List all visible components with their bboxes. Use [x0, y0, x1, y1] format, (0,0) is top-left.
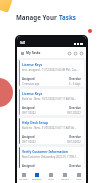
staticText: 09/12/2022 [67, 140, 81, 144]
staticText: Help Desk Setup [22, 121, 48, 125]
staticText: Overdue [69, 164, 81, 168]
button[interactable]: License Keys [19, 89, 84, 115]
staticText: Reports [61, 178, 70, 181]
staticText: My Tasks [19, 178, 29, 181]
staticText: Overdue [69, 77, 81, 81]
staticText: test - assigned - 11/12/2022 5:02:08 PM … [22, 68, 79, 72]
staticText: Overdue [69, 106, 81, 110]
staticText: 09/11/2022 [22, 140, 36, 144]
staticText: Chats [48, 178, 54, 181]
button[interactable]: My Tasks [17, 168, 30, 183]
staticText: 6 - 5 days [69, 82, 81, 86]
staticText: License Keys [22, 92, 43, 96]
staticText: 9:41 [20, 41, 26, 45]
staticText: Assigned [22, 135, 35, 139]
staticText: Requests [32, 178, 42, 181]
button[interactable]: Action [73, 51, 77, 55]
button[interactable]: Action [79, 51, 83, 55]
button[interactable]: License Keys [19, 60, 84, 86]
button[interactable]: Verify Customer Information [19, 147, 84, 168]
staticText: 09/12/2022 [67, 111, 81, 115]
staticText: Assigned [22, 164, 35, 168]
button[interactable]: Chats [44, 168, 58, 183]
button[interactable]: More [72, 168, 86, 183]
staticText: 3 minutes ago [22, 82, 40, 86]
staticText: Verify Customer Information [22, 150, 68, 154]
staticText: License Keys [22, 63, 43, 67]
staticText: More [76, 178, 82, 181]
staticText: Tasks [59, 13, 76, 21]
button[interactable]: Menu [20, 51, 24, 55]
button[interactable]: Reports [58, 168, 72, 183]
staticText: Assigned [22, 106, 35, 110]
staticText: Overdue [69, 135, 81, 139]
staticText: Build no - New - 31/05/2022 5:07:11 AM S… [22, 126, 77, 130]
staticText: New Customer Onboarding 2022-01-11T09:1.… [22, 155, 79, 159]
button[interactable]: Help Desk Setup [19, 118, 84, 144]
staticText: 09/11/2022 [22, 111, 36, 115]
button[interactable]: Requests [30, 168, 44, 183]
staticText: Assigned [22, 77, 35, 81]
staticText: My Tasks [26, 51, 41, 55]
button[interactable]: Action [67, 51, 71, 55]
staticText: Manage Your [16, 13, 59, 21]
staticText: Build no - New - 10/12/2022 5:07:11 AM S… [22, 97, 77, 101]
